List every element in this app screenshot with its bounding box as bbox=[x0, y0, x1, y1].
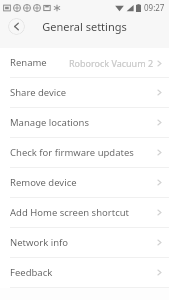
staticText: Check for firmware updates bbox=[10, 146, 134, 159]
staticText: Rename bbox=[10, 56, 47, 69]
button[interactable]: Feedback bbox=[0, 258, 169, 287]
staticText: Network info bbox=[10, 236, 69, 249]
button[interactable]: Add Home screen shortcut bbox=[0, 198, 169, 227]
staticText: Manage locations bbox=[10, 116, 89, 129]
staticText: Feedback bbox=[10, 266, 53, 279]
staticText: Add Home screen shortcut bbox=[10, 206, 130, 219]
button[interactable]: Check for firmware updates bbox=[0, 138, 169, 167]
staticText: Share device bbox=[10, 86, 67, 99]
staticText: 09:27 bbox=[144, 2, 165, 13]
button[interactable]: Remove device bbox=[0, 168, 169, 197]
staticText: Roborock Vacuum 2 bbox=[69, 57, 154, 69]
button[interactable]: Rename bbox=[0, 48, 169, 77]
button[interactable]: Share device bbox=[0, 78, 169, 107]
button[interactable]: Manage locations bbox=[0, 108, 169, 137]
staticText: Remove device bbox=[10, 176, 77, 189]
staticText: General settings bbox=[42, 19, 127, 34]
button[interactable]: Back bbox=[8, 18, 25, 35]
button[interactable]: Network info bbox=[0, 228, 169, 257]
